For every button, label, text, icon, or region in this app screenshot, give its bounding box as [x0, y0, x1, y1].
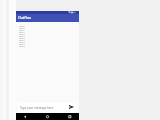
- button[interactable]: Type your message here: [18, 103, 77, 112]
- button[interactable]: Send: [67, 102, 76, 111]
- staticText: Item 1: [19, 41, 26, 43]
- staticText: Item 1: [19, 31, 26, 33]
- staticText: Item 1: [19, 37, 26, 39]
- staticText: Item 1: [19, 25, 26, 27]
- staticText: Item 1: [19, 45, 26, 47]
- staticText: Item 1: [19, 43, 26, 45]
- staticText: Type your message here: [20, 106, 54, 110]
- staticText: Item 1: [19, 27, 26, 29]
- staticText: ChatFlow: [18, 16, 31, 20]
- staticText: Item 1: [19, 35, 26, 37]
- staticText: Item 1: [19, 29, 26, 31]
- staticText: Item 1: [19, 33, 26, 35]
- staticText: Item 1: [19, 39, 26, 41]
